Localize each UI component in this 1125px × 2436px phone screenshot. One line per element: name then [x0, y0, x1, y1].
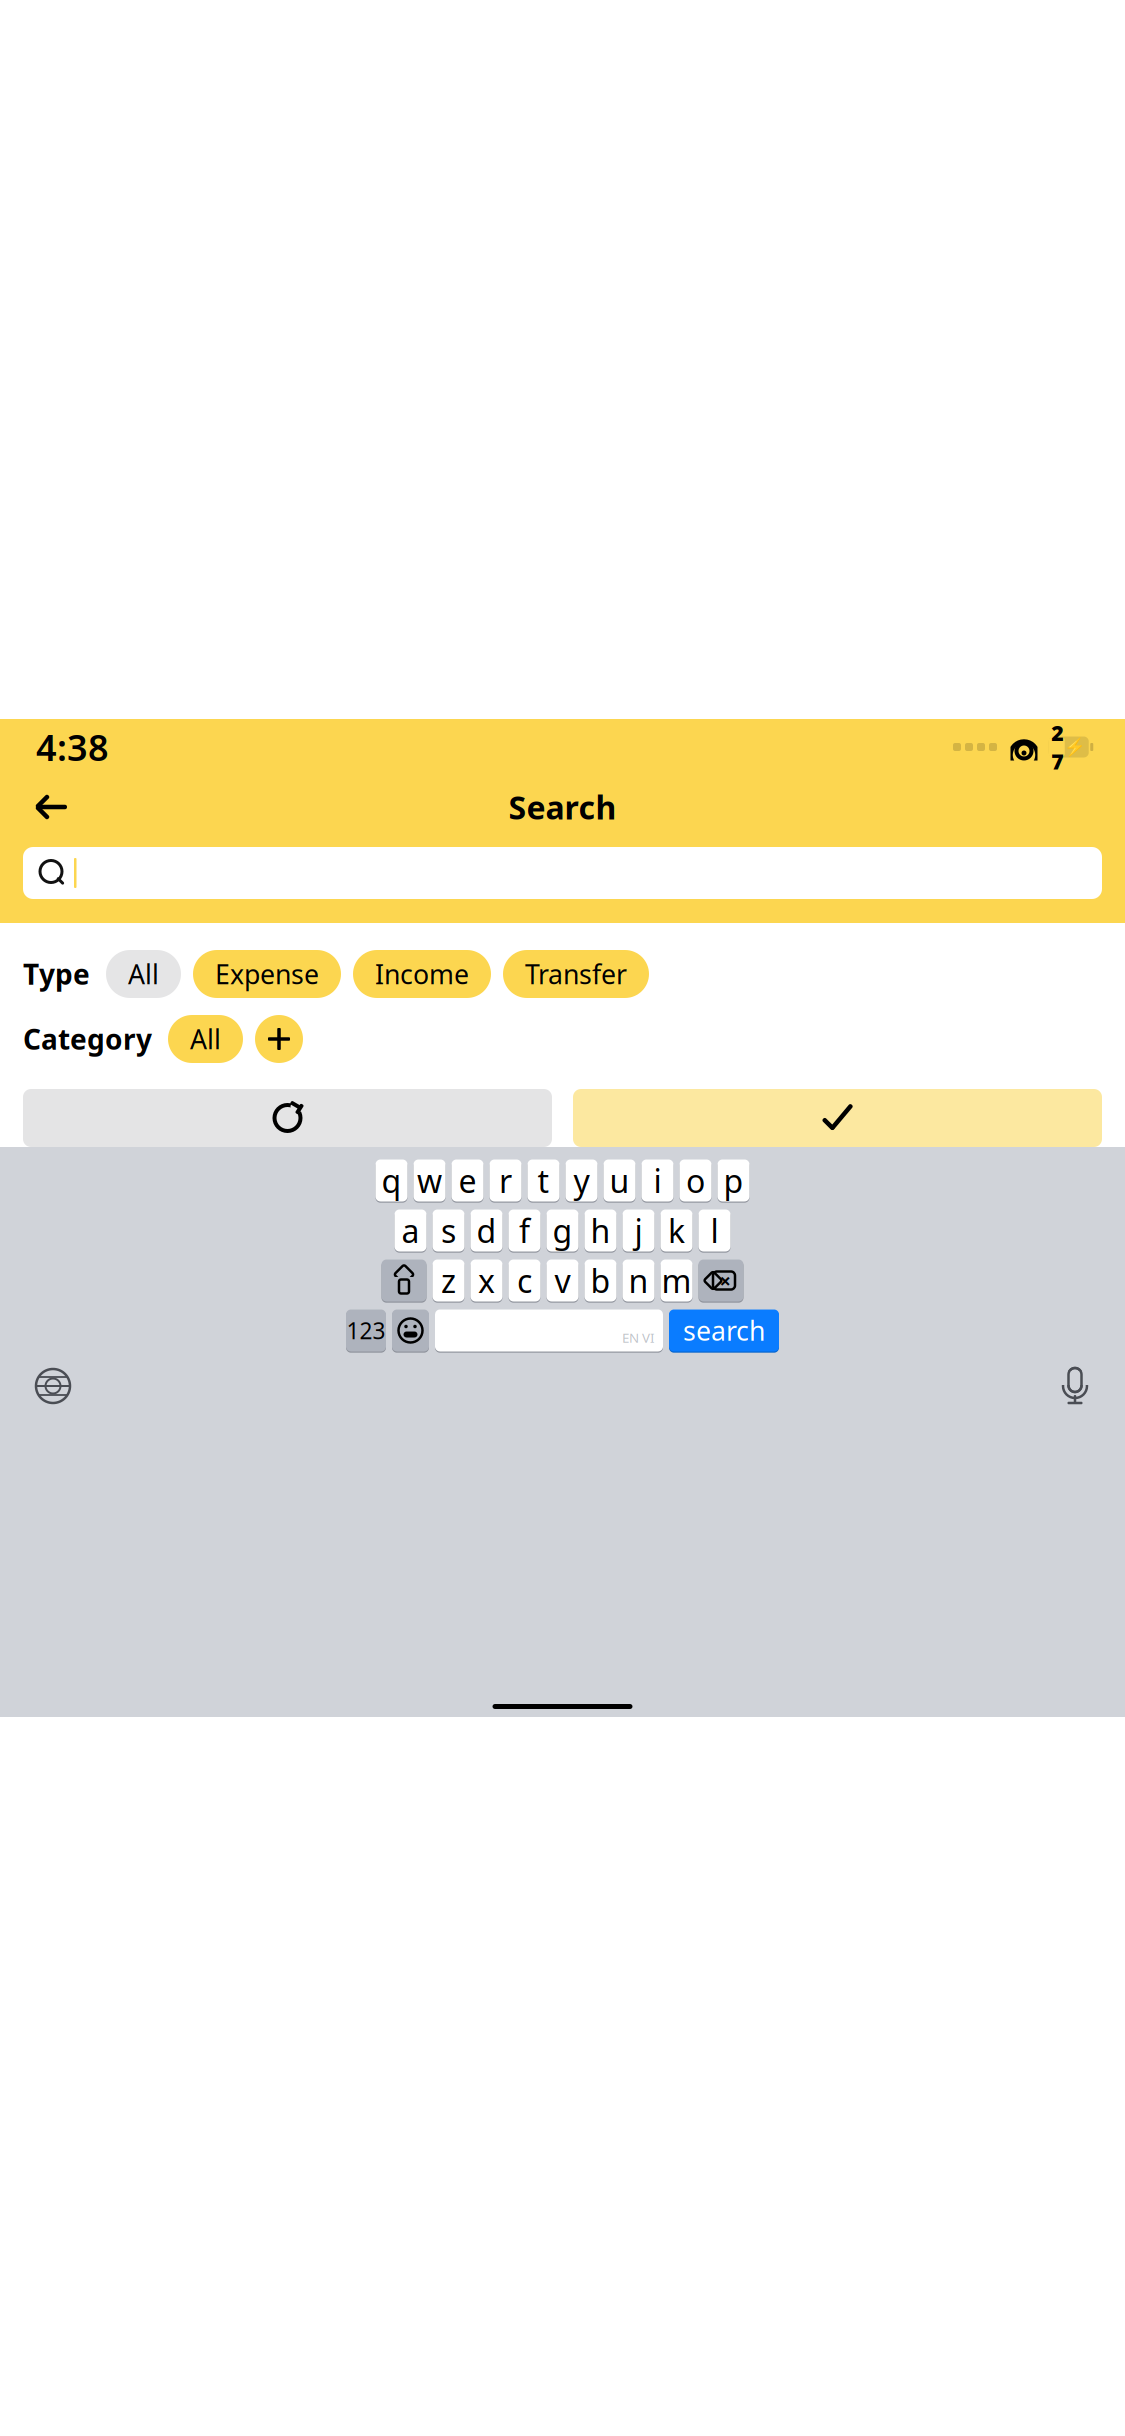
staticText: f [519, 1209, 530, 1252]
button[interactable]: d [470, 1209, 502, 1252]
staticText: b [590, 1259, 610, 1302]
button[interactable]: Expense [193, 950, 341, 998]
button[interactable]: 123 [346, 1309, 386, 1352]
button[interactable]: l [698, 1209, 730, 1252]
staticText: All [128, 956, 159, 992]
button[interactable]: r [489, 1159, 521, 1202]
staticText: i [653, 1159, 661, 1202]
button[interactable]: Add category [255, 1015, 303, 1063]
button[interactable]: Transfer [503, 950, 649, 998]
staticText: s [441, 1209, 456, 1252]
staticText: d [476, 1209, 496, 1252]
button[interactable]: n [622, 1259, 654, 1302]
staticText: r [499, 1159, 512, 1202]
staticText: Transfer [525, 956, 627, 992]
button[interactable]: Apply filters [573, 1089, 1102, 1147]
button[interactable]: g [546, 1209, 578, 1252]
button[interactable]: p [717, 1159, 749, 1202]
staticText: q [381, 1159, 401, 1202]
staticText: Type [23, 955, 90, 993]
button[interactable]: Next keyboard [34, 1367, 72, 1405]
button[interactable]: i [641, 1159, 673, 1202]
button[interactable]: j [622, 1209, 654, 1252]
staticText: t [537, 1159, 549, 1202]
button[interactable]: z [432, 1259, 464, 1302]
button[interactable]: u [603, 1159, 635, 1202]
button[interactable]: All [106, 950, 181, 998]
staticText: 27 [1051, 719, 1064, 775]
button[interactable]: v [546, 1259, 578, 1302]
button[interactable]: Shift [381, 1259, 426, 1302]
button[interactable]: w [413, 1159, 445, 1202]
staticText: v [554, 1259, 570, 1302]
staticText: All [190, 1021, 221, 1057]
button[interactable]: a [394, 1209, 426, 1252]
staticText: × [719, 1267, 730, 1294]
staticText: search [683, 1313, 765, 1348]
button[interactable]: c [508, 1259, 540, 1302]
staticText: p [723, 1159, 743, 1202]
staticText: z [441, 1259, 456, 1302]
staticText: j [634, 1209, 642, 1252]
button[interactable]: q [375, 1159, 407, 1202]
staticText: g [552, 1209, 572, 1252]
button[interactable]: m [660, 1259, 692, 1302]
button[interactable]: Reset filters [23, 1089, 552, 1147]
staticText: Income [375, 956, 469, 992]
staticText: 123 [346, 1315, 385, 1345]
button[interactable] [23, 847, 1102, 899]
staticText: u [609, 1159, 629, 1202]
button[interactable]: t [527, 1159, 559, 1202]
button[interactable]: Income [353, 950, 491, 998]
staticText: o [686, 1159, 705, 1202]
staticText: k [668, 1209, 685, 1252]
button[interactable]: search [669, 1309, 779, 1352]
button[interactable]: b [584, 1259, 616, 1302]
button[interactable]: e [451, 1159, 483, 1202]
staticText: y [573, 1159, 589, 1202]
staticText: c [517, 1259, 532, 1302]
staticText: m [661, 1259, 691, 1302]
staticText: EN VI [622, 1329, 655, 1346]
button[interactable]: space [435, 1309, 663, 1352]
staticText: x [478, 1259, 495, 1302]
staticText: 4:38 [36, 723, 109, 771]
button[interactable]: f [508, 1209, 540, 1252]
button[interactable]: Back [26, 784, 74, 830]
staticText: n [628, 1259, 648, 1302]
button[interactable]: s [432, 1209, 464, 1252]
staticText: e [458, 1159, 476, 1202]
button[interactable]: o [679, 1159, 711, 1202]
button[interactable]: Emoji [392, 1309, 429, 1352]
staticText: Search [508, 786, 616, 828]
staticText: h [590, 1209, 610, 1252]
button[interactable]: h [584, 1209, 616, 1252]
button[interactable]: y [565, 1159, 597, 1202]
button[interactable]: All [168, 1015, 243, 1063]
button[interactable]: k [660, 1209, 692, 1252]
staticText: ⚡ [1064, 737, 1086, 757]
staticText: l [710, 1209, 718, 1252]
staticText: Category [23, 1020, 152, 1058]
staticText: Expense [215, 956, 319, 992]
button[interactable]: Dictate [1059, 1366, 1091, 1406]
staticText: a [401, 1209, 419, 1252]
button[interactable]: Delete [698, 1259, 743, 1302]
staticText: w [417, 1159, 442, 1202]
button[interactable]: x [470, 1259, 502, 1302]
